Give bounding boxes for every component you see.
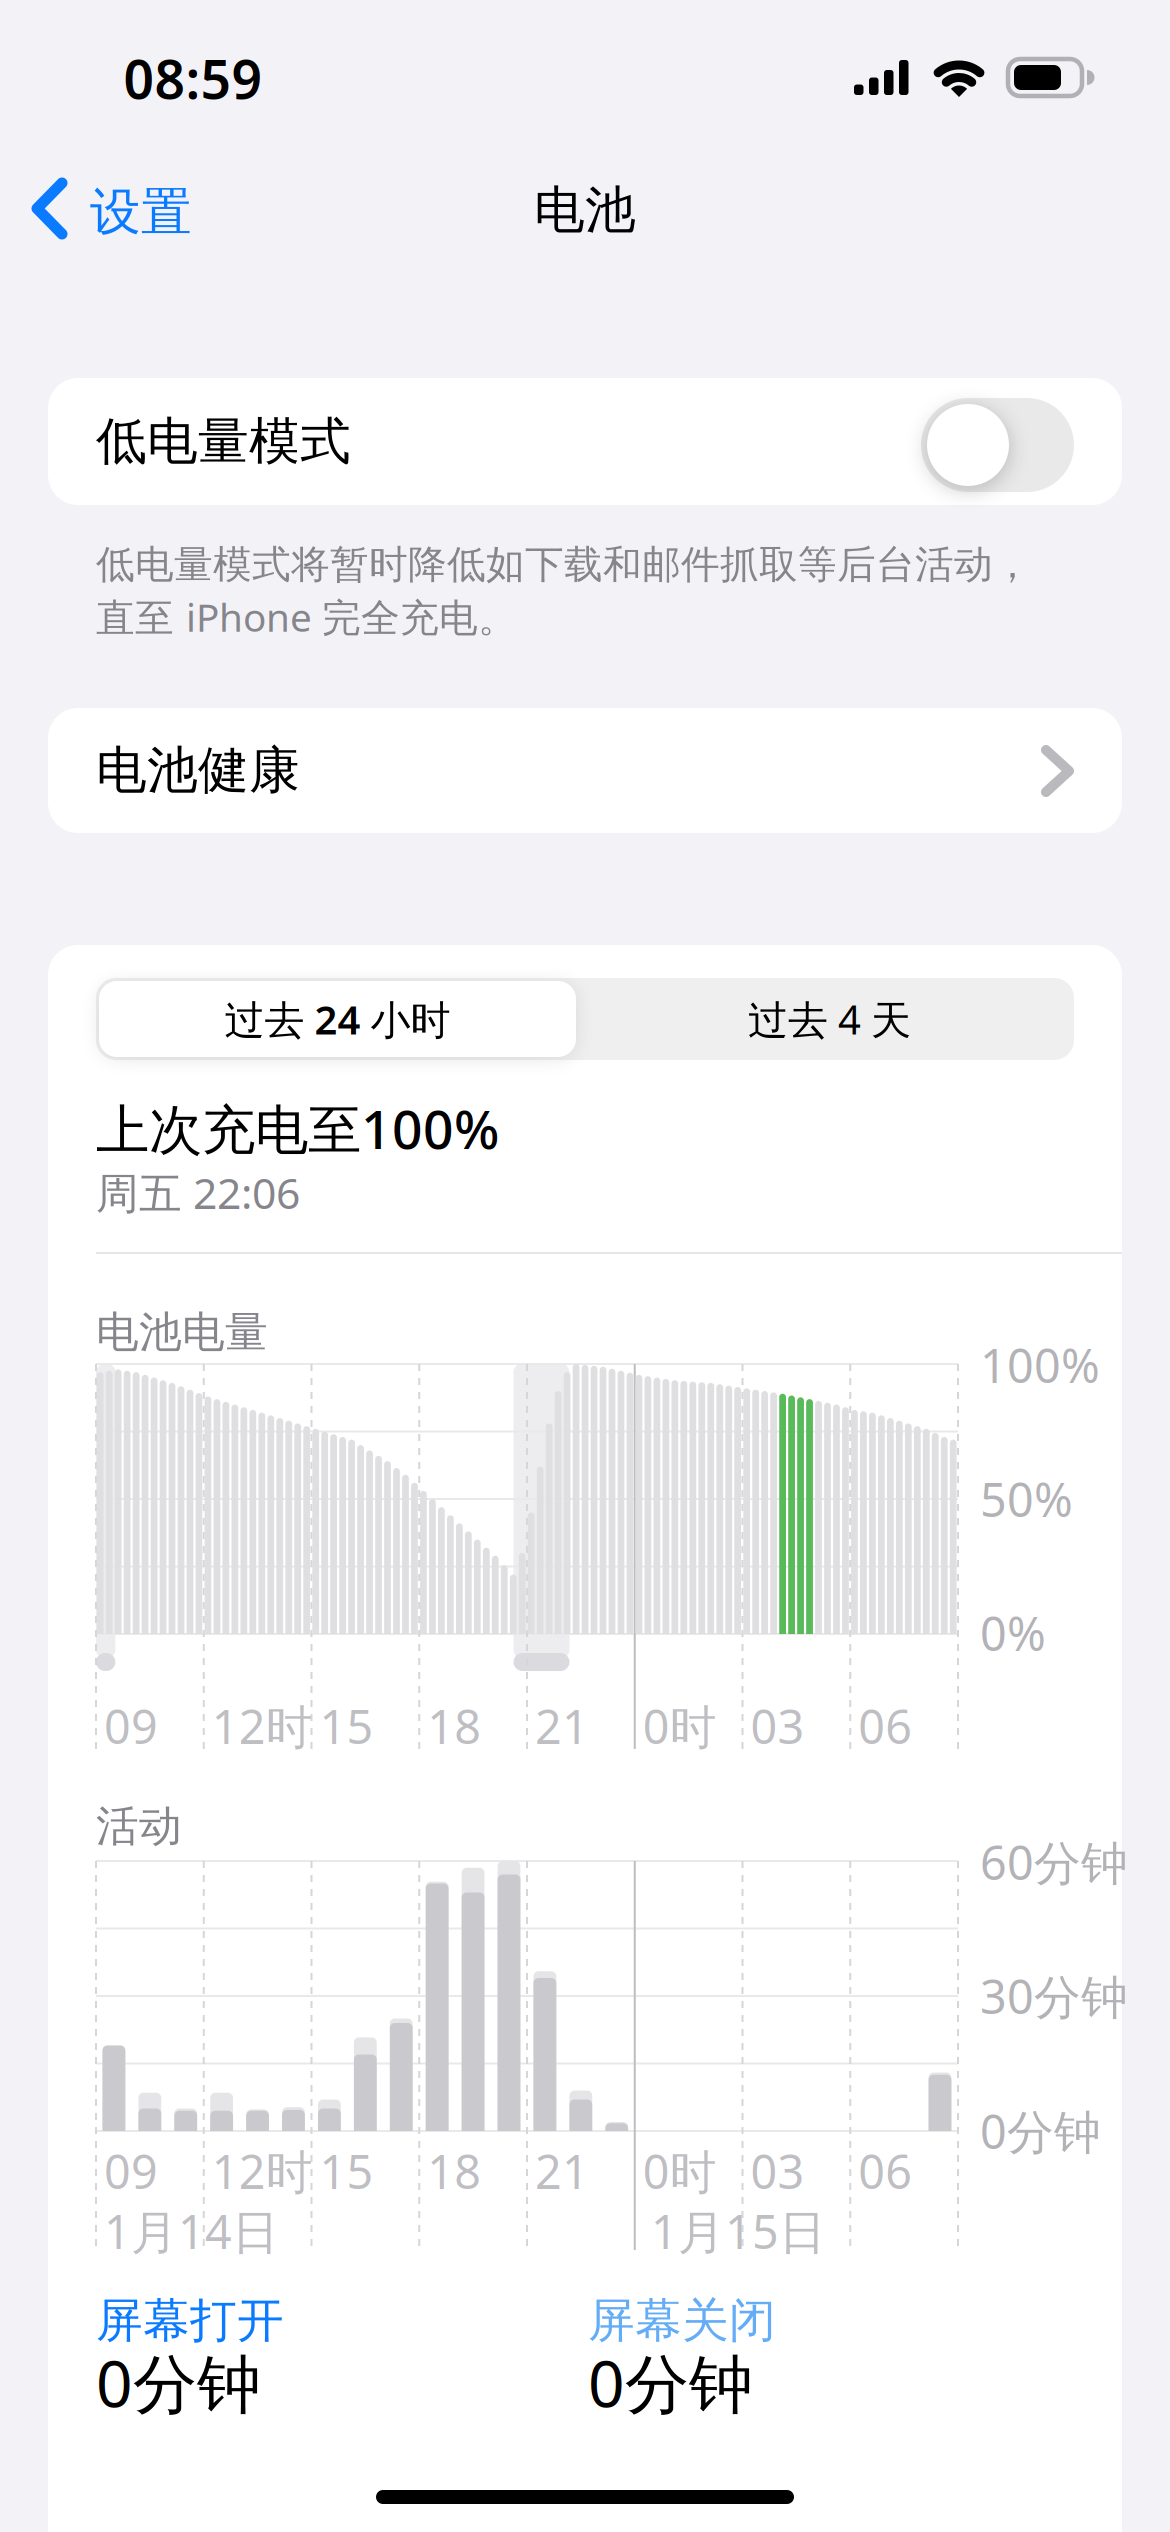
staticText: 电池健康 bbox=[96, 739, 300, 802]
staticText: 03 bbox=[750, 1695, 804, 1757]
staticText: 电池电量 bbox=[96, 1306, 268, 1358]
staticText: 0% bbox=[980, 1602, 1046, 1664]
staticText: 30分钟 bbox=[980, 1965, 1128, 2027]
staticText: 18 bbox=[427, 2140, 481, 2202]
staticText: 50% bbox=[980, 1468, 1073, 1530]
staticText: 活动 bbox=[96, 1800, 182, 1852]
staticText: 过去 4 天 bbox=[748, 992, 911, 1045]
staticText: 上次充电至100% bbox=[96, 1093, 499, 1164]
staticText: 21 bbox=[535, 2140, 589, 2202]
staticText: 低电量模式将暂时降低如下载和邮件抓取等后台活动， bbox=[96, 541, 1032, 588]
staticText: 15 bbox=[319, 1695, 373, 1757]
staticText: 21 bbox=[535, 1695, 589, 1757]
staticText: 06 bbox=[858, 1695, 912, 1757]
staticText: 15 bbox=[319, 2140, 373, 2202]
button[interactable]: 过去 24 小时 bbox=[96, 978, 573, 1054]
staticText: 0时 bbox=[643, 2140, 717, 2202]
staticText: 过去 24 小时 bbox=[224, 992, 450, 1045]
button[interactable]: 过去 4 天 bbox=[96, 978, 585, 1060]
staticText: 09 bbox=[104, 1695, 158, 1757]
staticText: 18 bbox=[427, 1695, 481, 1757]
staticText: 周五 22:06 bbox=[96, 1164, 300, 1221]
button[interactable]: 低电量模式 bbox=[0, 0, 1074, 127]
staticText: 0分钟 bbox=[96, 2340, 261, 2425]
staticText: 0时 bbox=[643, 1695, 717, 1757]
staticText: 12时 bbox=[212, 1695, 313, 1757]
staticText: 60分钟 bbox=[980, 1831, 1128, 1893]
staticText: 0分钟 bbox=[588, 2340, 753, 2425]
staticText: 电池 bbox=[534, 179, 636, 241]
staticText: 06 bbox=[858, 2140, 912, 2202]
staticText: 12时 bbox=[212, 2140, 313, 2202]
staticText: 100% bbox=[980, 1334, 1100, 1396]
staticText: 08:59 bbox=[123, 43, 262, 114]
staticText: 1月14日 bbox=[104, 2200, 279, 2262]
staticText: 直至 iPhone 完全充电。 bbox=[96, 591, 517, 642]
staticText: 低电量模式 bbox=[96, 410, 351, 473]
button[interactable]: Back to Settings bbox=[0, 0, 220, 280]
staticText: 设置 bbox=[90, 181, 192, 243]
staticText: 屏幕关闭 bbox=[588, 2292, 776, 2349]
staticText: 屏幕打开 bbox=[96, 2292, 284, 2349]
staticText: 03 bbox=[750, 2140, 804, 2202]
staticText: 09 bbox=[104, 2140, 158, 2202]
staticText: 1月15日 bbox=[651, 2200, 826, 2262]
staticText: 0分钟 bbox=[980, 2100, 1101, 2162]
button[interactable]: 电池健康 bbox=[0, 0, 1074, 125]
